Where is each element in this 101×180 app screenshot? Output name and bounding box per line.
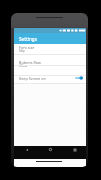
staticText: Font size [19, 45, 35, 50]
staticText: Settings [19, 36, 37, 42]
staticText: 4 Row [19, 64, 27, 68]
button[interactable]: Keep Screen on [14, 75, 86, 83]
button[interactable] [14, 65, 86, 75]
button[interactable]: Home [47, 146, 54, 153]
button[interactable]: Font size [14, 44, 86, 54]
button[interactable]: Back [23, 146, 30, 153]
button[interactable]: Recent apps [71, 146, 78, 153]
staticText: Buttons Row [19, 60, 41, 65]
button[interactable]: Buttons Row [14, 55, 86, 65]
staticText: Map [19, 49, 25, 53]
staticText: Keep Screen on [19, 76, 46, 81]
